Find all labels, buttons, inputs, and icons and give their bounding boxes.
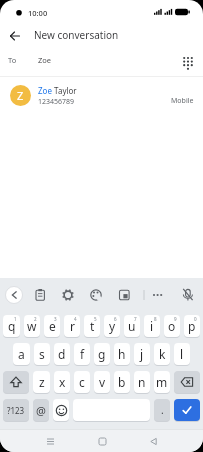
staticText: 8 <box>154 316 157 322</box>
staticText: c <box>79 374 85 390</box>
staticText: p <box>188 318 196 334</box>
button[interactable]: c <box>74 371 90 393</box>
staticText: 6 <box>114 316 117 322</box>
button[interactable]: a <box>13 343 30 365</box>
staticText: w <box>27 318 37 334</box>
button[interactable]: r <box>64 315 80 337</box>
button[interactable] <box>145 278 174 312</box>
button[interactable]: h <box>114 343 130 365</box>
staticText: 4 <box>74 316 77 322</box>
button[interactable]: e <box>44 315 60 337</box>
staticText: s <box>39 346 45 362</box>
staticText: k <box>159 346 166 362</box>
button[interactable]: y <box>104 315 120 337</box>
button[interactable]: g <box>94 343 110 365</box>
button[interactable] <box>58 278 87 312</box>
staticText: 2 <box>34 316 37 322</box>
button[interactable] <box>29 278 58 312</box>
button[interactable]: s <box>34 343 50 365</box>
button[interactable] <box>174 399 200 421</box>
staticText: j <box>140 346 144 362</box>
staticText: l <box>180 346 184 362</box>
button[interactable]: Z <box>0 77 203 121</box>
button[interactable] <box>116 278 145 312</box>
staticText: b <box>118 374 126 390</box>
button[interactable]: f <box>74 343 90 365</box>
staticText: t <box>90 318 95 334</box>
staticText: @ <box>36 403 46 418</box>
button[interactable] <box>181 55 197 71</box>
staticText: New conversation <box>34 28 119 42</box>
staticText: r <box>70 318 75 334</box>
staticText: z <box>39 374 45 390</box>
button[interactable]: v <box>94 371 110 393</box>
button[interactable]: @ <box>33 399 49 421</box>
button[interactable] <box>174 278 203 312</box>
staticText: h <box>118 346 126 362</box>
staticText: 0 <box>194 316 197 322</box>
staticText: Zoe <box>38 55 52 65</box>
staticText: i <box>150 318 154 334</box>
staticText: g <box>98 346 106 362</box>
staticText: 5 <box>94 316 97 322</box>
button[interactable] <box>0 278 29 312</box>
staticText: Mobile <box>171 96 194 106</box>
button[interactable]: u <box>124 315 140 337</box>
staticText: Taylor <box>52 85 77 96</box>
staticText: Z <box>17 88 24 103</box>
staticText: v <box>99 374 106 390</box>
staticText: y <box>109 318 116 334</box>
staticText: 9 <box>174 316 177 322</box>
button[interactable] <box>174 371 200 393</box>
button[interactable]: i <box>144 315 160 337</box>
button[interactable] <box>92 431 112 451</box>
button[interactable]: . <box>154 399 170 421</box>
button[interactable] <box>143 431 163 451</box>
button[interactable]: k <box>154 343 170 365</box>
button[interactable]: b <box>114 371 130 393</box>
staticText: e <box>49 318 56 334</box>
staticText: a <box>18 346 25 362</box>
staticText: ?123 <box>7 405 25 416</box>
staticText: 3 <box>54 316 57 322</box>
staticText: 1 <box>14 316 17 322</box>
staticText: . <box>161 403 164 417</box>
button[interactable]: t <box>84 315 100 337</box>
button[interactable]: q <box>3 315 20 337</box>
staticText: d <box>58 346 66 362</box>
staticText: 123456789 <box>38 97 75 107</box>
staticText: f <box>80 346 85 362</box>
button[interactable] <box>3 371 29 393</box>
staticText: x <box>59 374 66 390</box>
button[interactable] <box>87 278 116 312</box>
button[interactable] <box>53 399 69 421</box>
button[interactable]: l <box>174 343 190 365</box>
button[interactable] <box>40 431 60 451</box>
button[interactable]: n <box>134 371 150 393</box>
button[interactable]: d <box>54 343 70 365</box>
button[interactable]: To <box>0 48 203 76</box>
staticText: u <box>128 318 136 334</box>
staticText: 10:00 <box>28 8 48 18</box>
staticText: m <box>156 374 168 390</box>
staticText: To <box>8 55 17 65</box>
button[interactable]: p <box>184 315 200 337</box>
button[interactable]: m <box>154 371 170 393</box>
staticText: o <box>168 318 176 334</box>
button[interactable]: ?123 <box>3 399 29 421</box>
staticText: Zoe <box>38 85 52 96</box>
staticText: n <box>138 374 146 390</box>
staticText: q <box>8 318 16 334</box>
button[interactable]: x <box>54 371 70 393</box>
button[interactable]: z <box>33 371 50 393</box>
button[interactable]: o <box>164 315 180 337</box>
staticText: 7 <box>134 316 137 322</box>
button[interactable]: j <box>134 343 150 365</box>
button[interactable]: w <box>24 315 40 337</box>
button[interactable] <box>5 26 24 45</box>
